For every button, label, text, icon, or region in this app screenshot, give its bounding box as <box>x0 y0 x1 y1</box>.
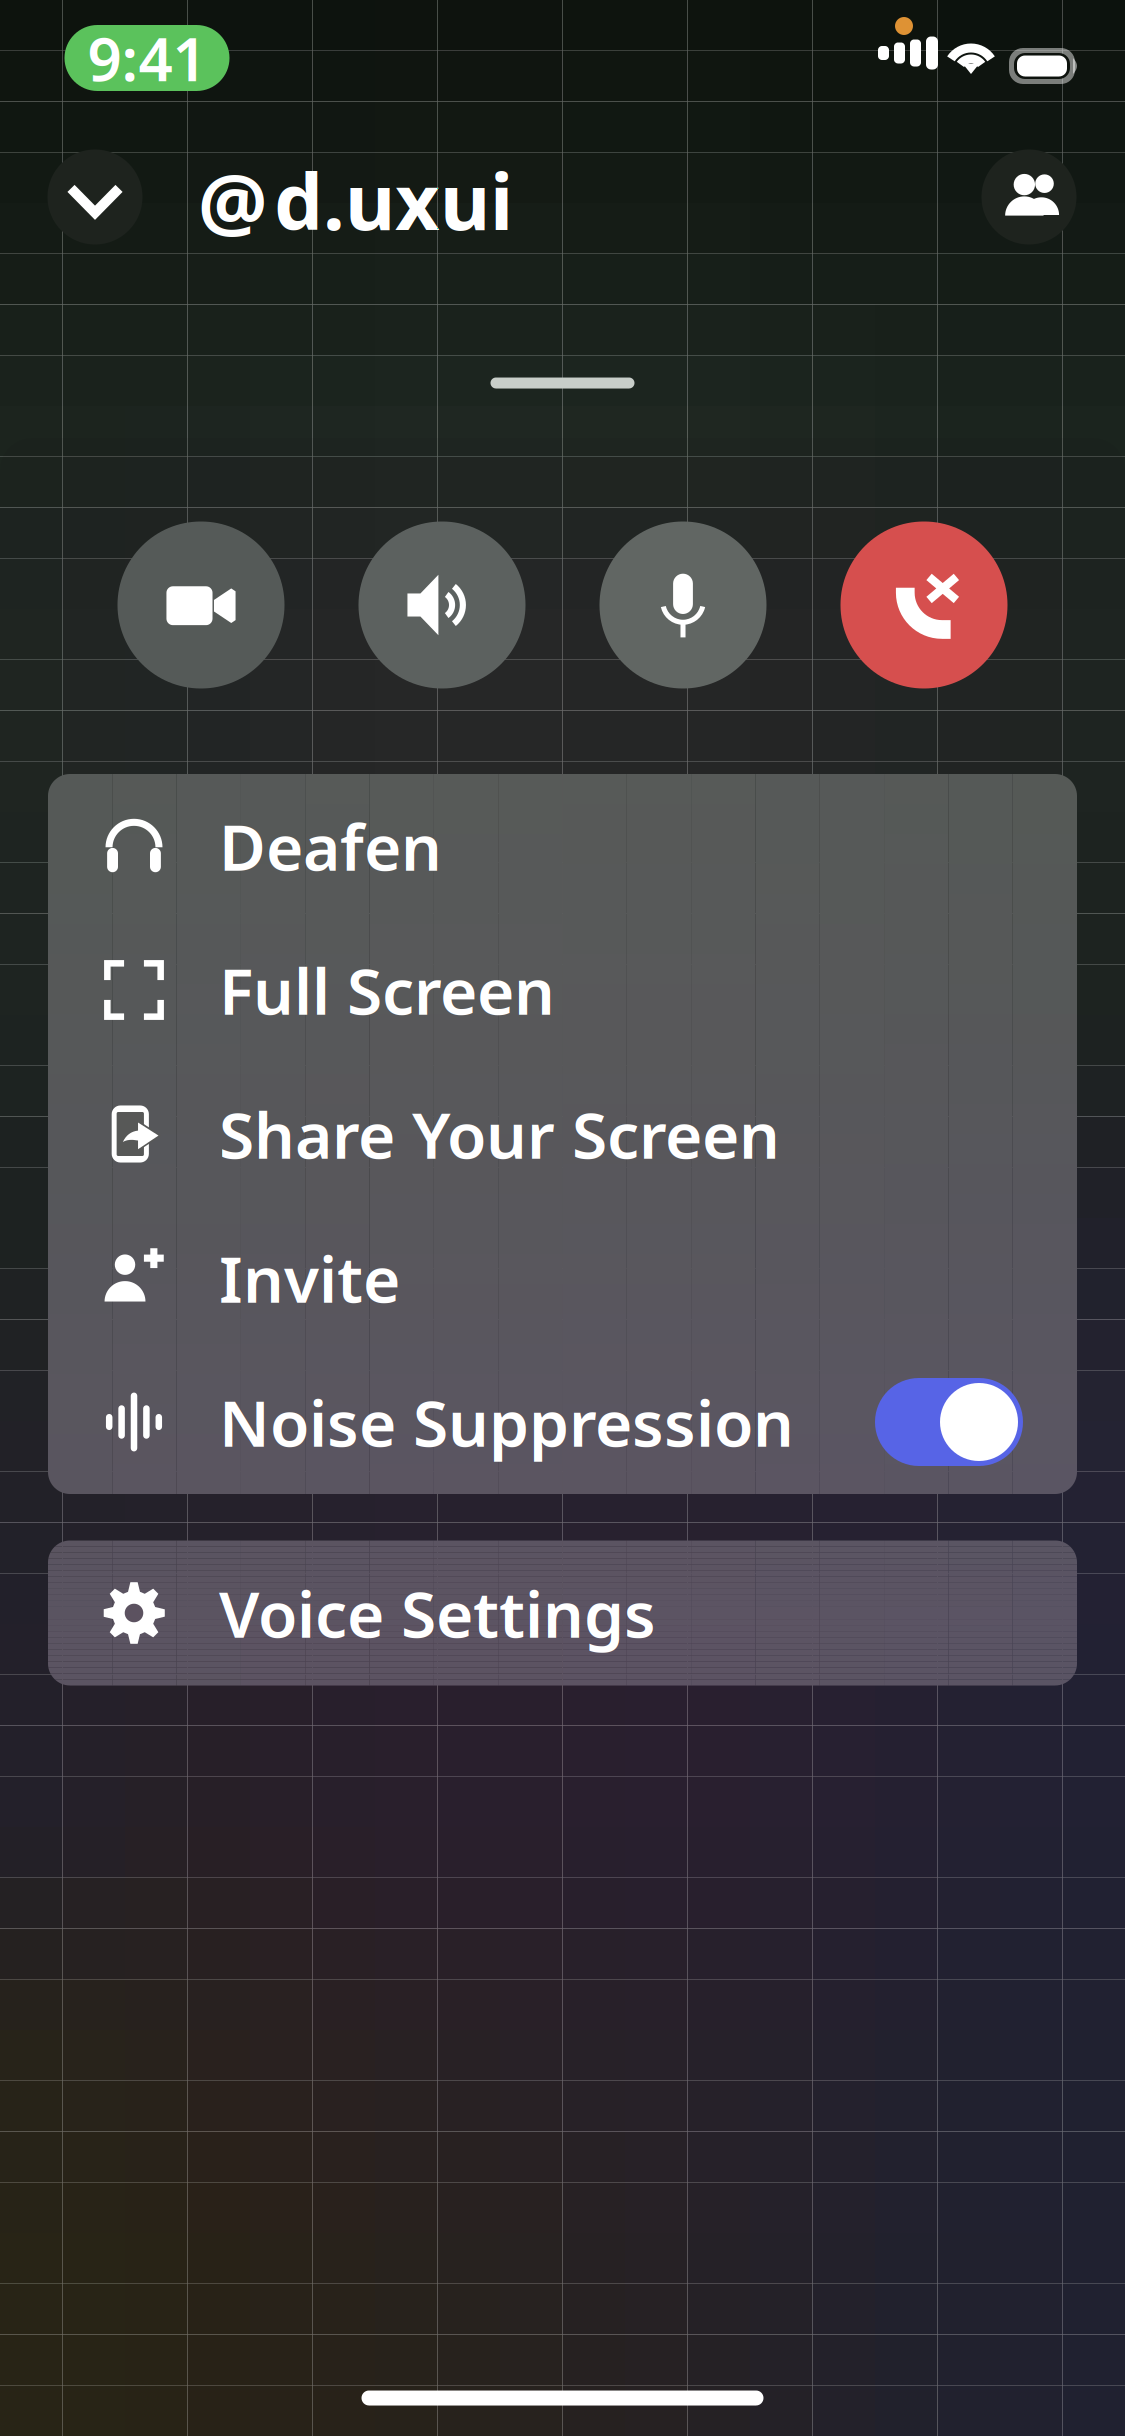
button[interactable]: Collapse call <box>47 149 142 244</box>
button[interactable]: Noise Suppression <box>48 1350 1077 1494</box>
staticText: d.uxui <box>274 149 513 251</box>
button[interactable]: Members <box>981 149 1076 244</box>
staticText: Share Your Screen <box>219 1091 780 1176</box>
button[interactable]: Share Your Screen <box>48 1062 1077 1206</box>
button[interactable]: Full Screen <box>48 918 1077 1062</box>
staticText: Noise Suppression <box>219 1379 794 1464</box>
button[interactable]: Speaker <box>358 521 525 688</box>
staticText: 9:41 <box>87 18 206 98</box>
staticText: Deafen <box>219 803 442 888</box>
button[interactable]: Camera <box>117 521 284 688</box>
button[interactable]: Invite <box>48 1206 1077 1350</box>
staticText: Full Screen <box>219 947 555 1032</box>
button[interactable]: End call <box>840 521 1007 688</box>
staticText: Invite <box>219 1235 400 1320</box>
staticText: Voice Settings <box>219 1570 656 1655</box>
staticText: @ <box>198 150 267 252</box>
button[interactable]: Mute microphone <box>599 521 766 688</box>
button[interactable]: Deafen <box>48 774 1077 918</box>
button[interactable]: Voice Settings <box>48 1540 1077 1685</box>
